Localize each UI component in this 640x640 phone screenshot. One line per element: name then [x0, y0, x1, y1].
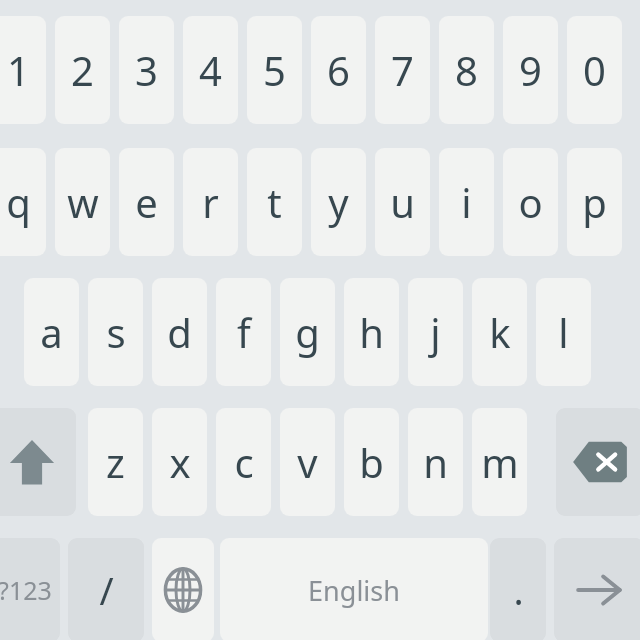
- staticText: 9: [519, 43, 542, 97]
- button[interactable]: s: [88, 278, 143, 386]
- button[interactable]: i: [439, 148, 494, 256]
- button[interactable]: ?123: [0, 538, 60, 640]
- button[interactable]: w: [55, 148, 110, 256]
- staticText: 5: [263, 43, 286, 97]
- staticText: g: [295, 305, 320, 359]
- staticText: t: [267, 175, 282, 229]
- staticText: 2: [71, 43, 94, 97]
- button[interactable]: Enter: [554, 538, 640, 640]
- button[interactable]: 3: [119, 16, 174, 124]
- staticText: h: [359, 305, 384, 359]
- staticText: k: [489, 305, 511, 359]
- staticText: w: [67, 175, 99, 229]
- button[interactable]: h: [344, 278, 399, 386]
- button[interactable]: v: [280, 408, 335, 516]
- staticText: .: [513, 564, 524, 616]
- staticText: z: [106, 435, 125, 489]
- staticText: a: [40, 305, 63, 359]
- button[interactable]: y: [311, 148, 366, 256]
- staticText: b: [359, 435, 384, 489]
- button[interactable]: English: [220, 538, 488, 640]
- button[interactable]: k: [472, 278, 527, 386]
- button[interactable]: n: [408, 408, 463, 516]
- button[interactable]: t: [247, 148, 302, 256]
- staticText: English: [308, 572, 400, 609]
- button[interactable]: 5: [247, 16, 302, 124]
- button[interactable]: j: [408, 278, 463, 386]
- staticText: d: [167, 305, 192, 359]
- button[interactable]: 6: [311, 16, 366, 124]
- button[interactable]: x: [152, 408, 207, 516]
- button[interactable]: e: [119, 148, 174, 256]
- button[interactable]: f: [216, 278, 271, 386]
- staticText: 6: [327, 43, 350, 97]
- staticText: e: [135, 175, 158, 229]
- button[interactable]: r: [183, 148, 238, 256]
- staticText: 1: [7, 43, 30, 97]
- button[interactable]: d: [152, 278, 207, 386]
- staticText: i: [461, 175, 472, 229]
- button[interactable]: z: [88, 408, 143, 516]
- staticText: y: [328, 175, 349, 229]
- button[interactable]: /: [68, 538, 144, 640]
- button[interactable]: g: [280, 278, 335, 386]
- staticText: o: [518, 175, 543, 229]
- staticText: n: [423, 435, 448, 489]
- staticText: 8: [455, 43, 478, 97]
- button[interactable]: Shift: [0, 408, 76, 516]
- staticText: 0: [583, 43, 606, 97]
- button[interactable]: l: [536, 278, 591, 386]
- staticText: u: [390, 175, 415, 229]
- staticText: v: [297, 435, 318, 489]
- button[interactable]: b: [344, 408, 399, 516]
- staticText: 7: [391, 43, 414, 97]
- button[interactable]: 7: [375, 16, 430, 124]
- staticText: s: [106, 305, 126, 359]
- staticText: q: [6, 175, 31, 229]
- staticText: m: [481, 435, 519, 489]
- staticText: f: [237, 305, 251, 359]
- staticText: 3: [135, 43, 158, 97]
- staticText: p: [582, 175, 607, 229]
- button[interactable]: q: [0, 148, 46, 256]
- staticText: c: [234, 435, 254, 489]
- button[interactable]: 1: [0, 16, 46, 124]
- staticText: 4: [199, 43, 222, 97]
- button[interactable]: m: [472, 408, 527, 516]
- staticText: /: [99, 564, 114, 616]
- staticText: l: [558, 305, 569, 359]
- button[interactable]: u: [375, 148, 430, 256]
- staticText: r: [202, 175, 219, 229]
- staticText: x: [169, 435, 191, 489]
- button[interactable]: .: [490, 538, 546, 640]
- button[interactable]: Backspace: [556, 408, 640, 516]
- button[interactable]: o: [503, 148, 558, 256]
- button[interactable]: Change language: [152, 538, 214, 640]
- staticText: ?123: [0, 573, 52, 607]
- button[interactable]: 0: [567, 16, 622, 124]
- button[interactable]: a: [24, 278, 79, 386]
- button[interactable]: 4: [183, 16, 238, 124]
- button[interactable]: c: [216, 408, 271, 516]
- button[interactable]: 9: [503, 16, 558, 124]
- button[interactable]: 8: [439, 16, 494, 124]
- button[interactable]: p: [567, 148, 622, 256]
- button[interactable]: 2: [55, 16, 110, 124]
- staticText: j: [430, 305, 441, 359]
